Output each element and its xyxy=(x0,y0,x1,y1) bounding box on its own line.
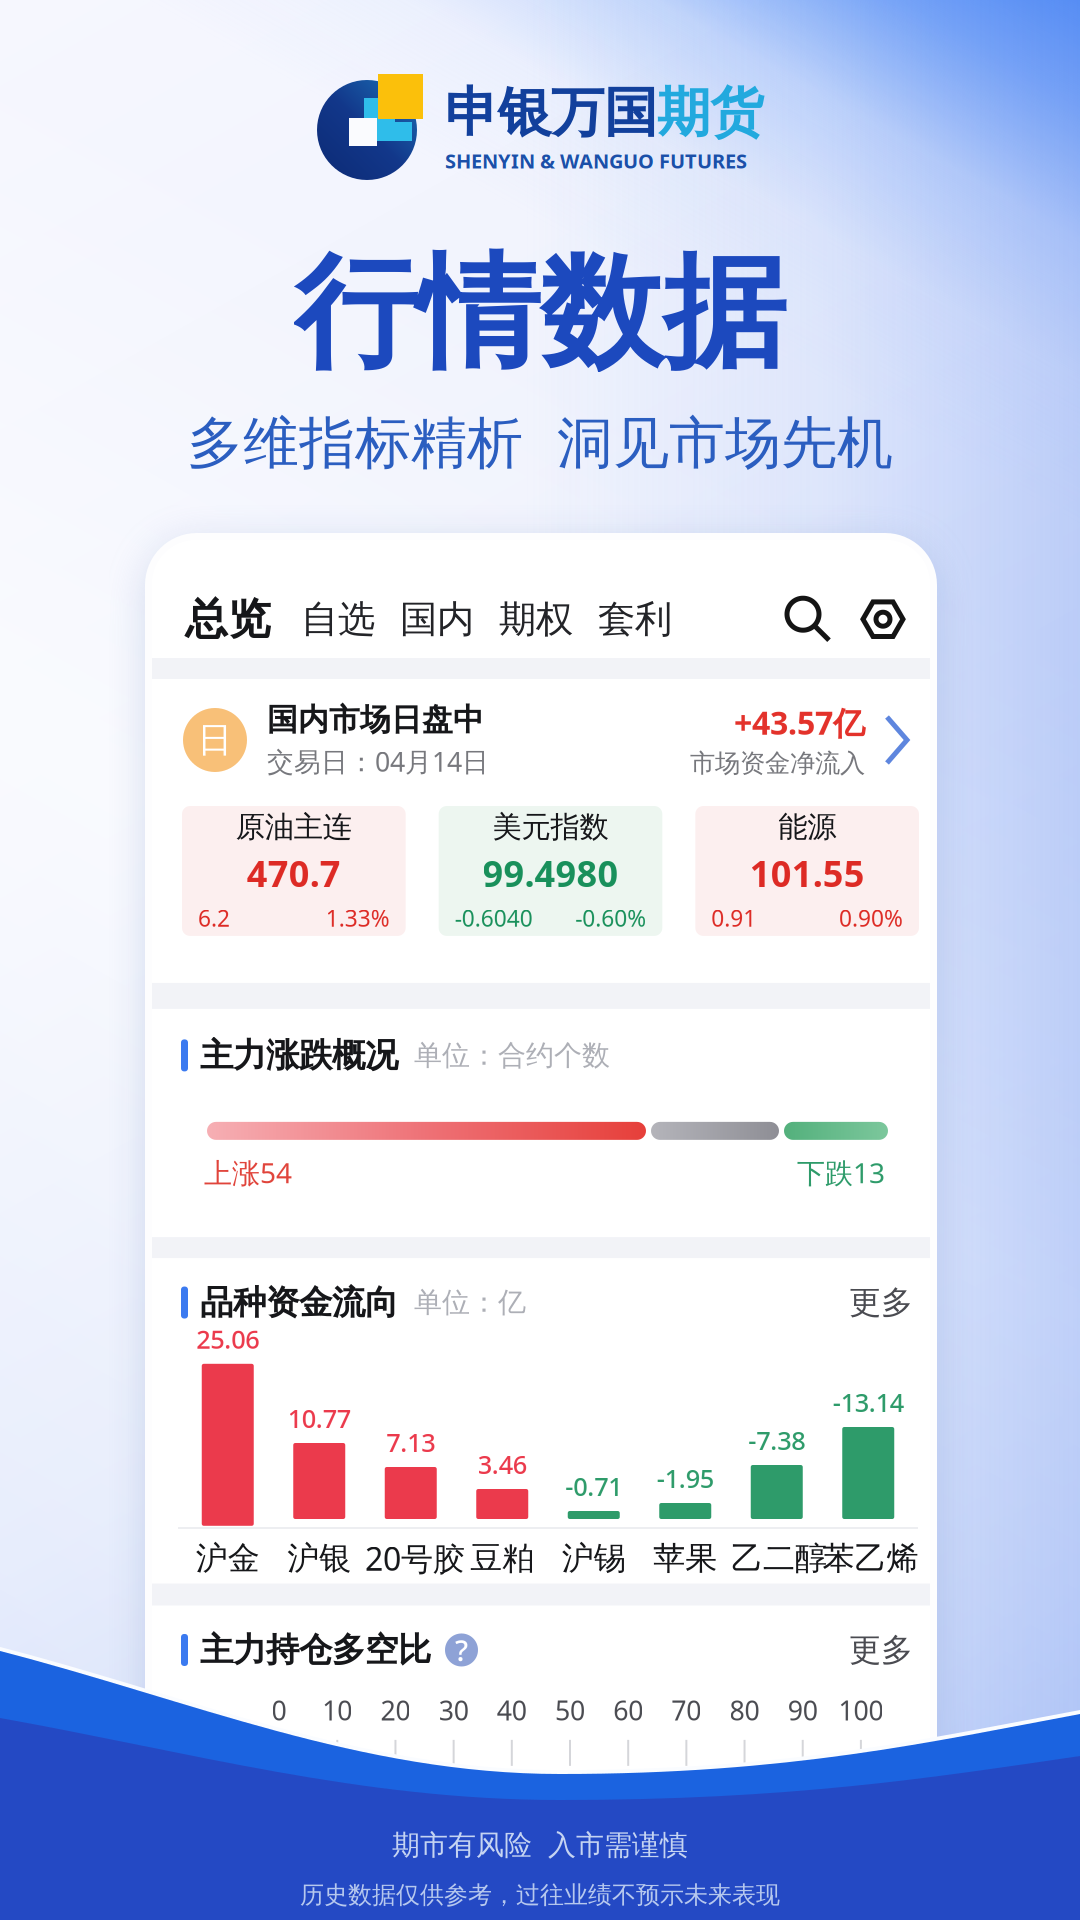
staticText: 国内 xyxy=(400,596,474,642)
staticText: 日 xyxy=(197,719,232,761)
staticText: -0.60% xyxy=(575,903,646,933)
button[interactable]: 自选 xyxy=(301,596,400,642)
button[interactable]: Search xyxy=(784,595,832,643)
staticText: 总览 xyxy=(185,593,271,645)
staticText: 苹果 xyxy=(653,1539,717,1578)
staticText: 美元指数 xyxy=(492,809,608,845)
staticText: 99.4980 xyxy=(482,849,618,897)
staticText: 7.13 xyxy=(386,1425,435,1459)
staticText: 100 xyxy=(838,1692,883,1728)
button[interactable]: 国内 xyxy=(400,596,499,642)
button[interactable]: 总览 xyxy=(185,593,301,645)
staticText: 沪金 xyxy=(196,1539,260,1578)
staticText: 沪银 xyxy=(287,1539,351,1578)
staticText: 更多 xyxy=(849,1630,913,1670)
staticText: 主力持仓多空比 xyxy=(200,1629,431,1670)
button[interactable]: 期权 xyxy=(499,596,598,642)
staticText: 豆粕 xyxy=(470,1539,534,1578)
staticText: 国内市场日盘中 xyxy=(267,701,484,739)
staticText: 60 xyxy=(613,1692,643,1728)
staticText: 6.2 xyxy=(198,903,230,933)
staticText: 期权 xyxy=(499,596,573,642)
staticText: 3.46 xyxy=(478,1447,527,1481)
staticText: 470.7 xyxy=(247,849,341,897)
staticText: 0 xyxy=(272,1692,287,1728)
staticText: 30 xyxy=(439,1692,469,1728)
staticText: 历史数据仅供参考，过往业绩不预示未来表现 xyxy=(300,1880,780,1910)
staticText: -13.14 xyxy=(833,1385,904,1419)
staticText: 行情数据 xyxy=(294,238,786,389)
staticText: 下跌13 xyxy=(797,1154,885,1191)
staticText: 单位：亿 xyxy=(414,1285,526,1320)
staticText: 交易日：04月14日 xyxy=(267,744,489,779)
staticText: 上涨54 xyxy=(204,1154,292,1191)
staticText: SHENYIN & WANGUO FUTURES xyxy=(445,147,747,174)
staticText: 苯乙烯 xyxy=(822,1539,918,1578)
staticText: -0.71 xyxy=(565,1469,622,1503)
staticText: 90 xyxy=(788,1692,818,1728)
staticText: 0.91 xyxy=(711,903,756,933)
staticText: +43.57亿 xyxy=(734,701,865,744)
staticText: 70 xyxy=(671,1692,701,1728)
button[interactable]: 日 xyxy=(152,679,930,806)
staticText: 原油主连 xyxy=(236,809,352,845)
staticText: 自选 xyxy=(301,596,375,642)
staticText: -0.6040 xyxy=(455,903,533,933)
staticText: -1.95 xyxy=(657,1461,714,1495)
staticText: ? xyxy=(455,1630,468,1669)
staticText: 市场资金净流入 xyxy=(690,748,865,779)
staticText: 单位：合约个数 xyxy=(414,1038,610,1073)
staticText: 101.55 xyxy=(750,849,865,897)
staticText: 沪锡 xyxy=(562,1539,626,1578)
staticText: 50 xyxy=(555,1692,585,1728)
staticText: 主力涨跌概况 xyxy=(200,1035,398,1076)
staticText: 期市有风险 入市需谨慎 xyxy=(392,1828,688,1862)
staticText: 40 xyxy=(497,1692,527,1728)
staticText: 20 xyxy=(380,1692,410,1728)
staticText: 20号胶 xyxy=(365,1537,465,1579)
staticText: 品种资金流向 xyxy=(200,1282,398,1323)
staticText: 期货 xyxy=(657,80,763,145)
staticText: 套利 xyxy=(598,596,672,642)
staticText: 25.06 xyxy=(196,1322,259,1356)
staticText: 0.90% xyxy=(839,903,903,933)
staticText: -7.38 xyxy=(748,1423,805,1457)
staticText: 申银万国 xyxy=(445,80,657,145)
staticText: 多维指标精析 洞见市场先机 xyxy=(187,409,893,478)
staticText: 1.33% xyxy=(326,903,390,933)
staticText: 10 xyxy=(322,1692,352,1728)
button[interactable]: 更多 xyxy=(849,1630,913,1670)
staticText: 乙二醇 xyxy=(731,1539,827,1578)
button[interactable]: 套利 xyxy=(598,596,697,642)
staticText: 80 xyxy=(729,1692,759,1728)
staticText: 更多 xyxy=(849,1283,913,1322)
button[interactable]: 更多 xyxy=(849,1283,913,1322)
button[interactable]: Settings xyxy=(860,595,908,643)
staticText: 10.77 xyxy=(288,1401,351,1435)
staticText: 能源 xyxy=(778,809,836,845)
